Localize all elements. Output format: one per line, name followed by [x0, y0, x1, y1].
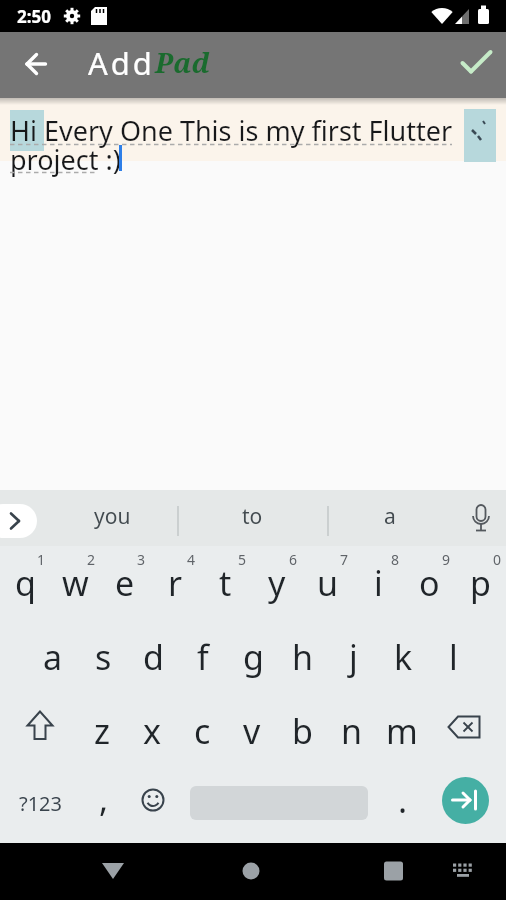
button[interactable]: ?123 [1, 766, 79, 840]
button[interactable]: c [177, 694, 227, 768]
staticText: u [317, 560, 339, 606]
staticText: t [219, 560, 232, 606]
button[interactable] [226, 846, 276, 896]
staticText: h [292, 634, 314, 680]
staticText: 9 [442, 550, 451, 569]
button[interactable]: n [327, 694, 377, 768]
staticText: g [243, 634, 264, 680]
button[interactable]: j [328, 620, 378, 694]
button[interactable]: k [378, 620, 428, 694]
staticText: 1 [37, 550, 46, 569]
button[interactable]: d [128, 620, 178, 694]
staticText: z [94, 708, 110, 754]
button[interactable]: to [207, 496, 297, 536]
button[interactable]: o [404, 546, 455, 620]
button[interactable]: m [377, 694, 427, 768]
button[interactable]: w [50, 546, 100, 620]
button[interactable]: q [0, 546, 50, 620]
button[interactable]: l [428, 620, 478, 694]
button[interactable]: you [67, 496, 157, 536]
staticText: 0 [493, 550, 502, 569]
button[interactable]: e [100, 546, 150, 620]
staticText: r [168, 560, 183, 606]
button[interactable]: x [127, 694, 177, 768]
staticText: ?123 [19, 790, 62, 817]
button[interactable]: a [28, 620, 78, 694]
staticText: i [374, 560, 383, 606]
staticText: e [115, 560, 135, 606]
staticText: 2:50 [17, 5, 51, 28]
staticText: w [62, 560, 89, 606]
button[interactable]: h [278, 620, 328, 694]
button[interactable] [460, 500, 502, 542]
button[interactable] [442, 777, 489, 824]
button[interactable]: v [227, 694, 277, 768]
staticText: p [470, 560, 491, 606]
staticText: 6 [289, 550, 298, 569]
staticText: Add [88, 42, 155, 82]
button[interactable] [427, 694, 506, 768]
staticText: a [43, 634, 63, 680]
staticText: o [419, 560, 440, 606]
button[interactable]: z [77, 694, 127, 768]
staticText: c [194, 708, 211, 754]
staticText: b [292, 708, 313, 754]
button[interactable]: t [200, 546, 251, 620]
button[interactable] [133, 780, 173, 820]
button[interactable]: b [277, 694, 327, 768]
button[interactable] [12, 41, 60, 89]
button[interactable]: a [345, 496, 435, 536]
staticText: 3 [137, 550, 146, 569]
button[interactable]: i [353, 546, 404, 620]
button[interactable] [454, 40, 502, 88]
staticText: d [143, 634, 164, 680]
staticText: j [349, 634, 358, 680]
staticText: l [449, 634, 458, 680]
button[interactable] [0, 98, 506, 161]
staticText: k [394, 634, 413, 680]
staticText: Hi Every One This is my first Flutter [10, 112, 453, 149]
staticText: f [197, 634, 209, 680]
staticText: you [94, 502, 131, 531]
staticText: x [143, 708, 161, 754]
button[interactable]: , [84, 762, 124, 836]
staticText: to [242, 502, 263, 531]
button[interactable] [368, 846, 418, 896]
button[interactable]: u [302, 546, 353, 620]
button[interactable] [440, 846, 490, 896]
button[interactable] [88, 846, 138, 896]
staticText: project :) [10, 141, 121, 178]
staticText: 5 [238, 550, 247, 569]
staticText: Pad [155, 44, 210, 81]
button[interactable]: p [455, 546, 506, 620]
staticText: 8 [391, 550, 400, 569]
button[interactable]: f [178, 620, 228, 694]
staticText: 2 [87, 550, 96, 569]
staticText: 7 [340, 550, 349, 569]
staticText: n [341, 708, 363, 754]
button[interactable]: . [383, 763, 423, 837]
staticText: v [243, 708, 261, 754]
staticText: q [15, 560, 36, 606]
staticText: , [99, 776, 109, 822]
button[interactable]: g [228, 620, 278, 694]
button[interactable]: y [251, 546, 302, 620]
button[interactable] [0, 694, 77, 768]
button[interactable]: s [78, 620, 128, 694]
staticText: y [268, 560, 286, 606]
staticText: m [386, 708, 418, 754]
button[interactable] [0, 504, 37, 538]
staticText: a [384, 502, 396, 531]
button[interactable]: r [150, 546, 200, 620]
staticText: . [398, 777, 408, 823]
staticText: 4 [187, 550, 196, 569]
staticText: s [95, 634, 112, 680]
